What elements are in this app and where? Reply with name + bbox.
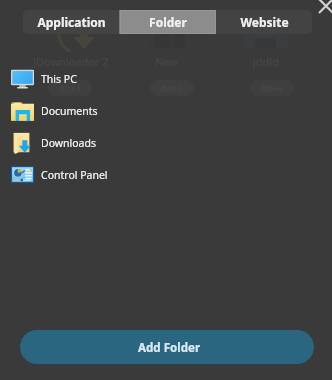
- button[interactable]: Documents: [0, 95, 332, 127]
- button[interactable]: Application: [23, 10, 120, 34]
- button[interactable]: Close: [318, 0, 332, 14]
- staticText: Control Panel: [41, 168, 108, 182]
- staticText: Alt+4: [59, 82, 81, 94]
- staticText: New: [155, 54, 178, 69]
- staticText: jddld: [253, 54, 279, 69]
- button[interactable]: Website: [216, 10, 312, 34]
- staticText: Downloads: [41, 136, 96, 150]
- staticText: This PC: [41, 72, 77, 86]
- button[interactable]: Folder: [120, 10, 216, 34]
- button[interactable]: Downloads: [0, 127, 332, 159]
- staticText: Website: [240, 14, 289, 30]
- staticText: Documents: [41, 104, 98, 118]
- button[interactable]: This PC: [0, 63, 332, 95]
- button[interactable]: Add Folder: [20, 330, 314, 364]
- button[interactable]: Control Panel: [0, 159, 332, 191]
- staticText: Application: [37, 14, 106, 30]
- staticText: Add Folder: [138, 340, 201, 356]
- staticText: Folder: [149, 14, 187, 30]
- staticText: JDownloader 2: [33, 54, 109, 69]
